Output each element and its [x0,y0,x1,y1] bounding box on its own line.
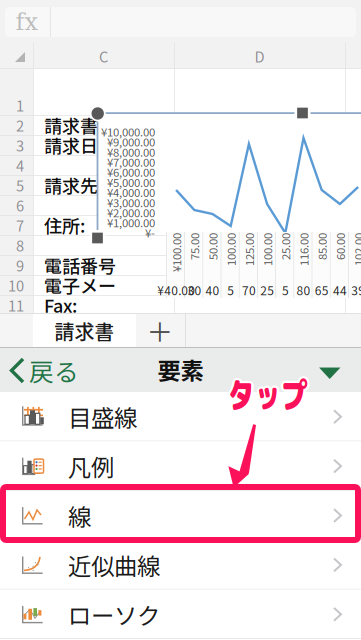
staticText: ¥40.00 [157,281,195,299]
staticText: C [99,45,108,67]
staticText: 8 [16,234,24,256]
button[interactable]: 近似曲線 [0,540,361,590]
staticText: 80 [297,281,311,299]
staticText: 85.00 [324,254,351,270]
staticText: 要素 [157,353,203,386]
staticText: 30 [187,281,201,299]
staticText: ¥7,000.00 [107,154,155,170]
staticText: 5 [16,174,24,196]
staticText: 40 [206,281,220,299]
staticText: 11 [8,294,24,316]
button[interactable]: 戻る [0,348,80,392]
staticText: ¥6,000.00 [107,164,155,180]
button[interactable]: 請求書 [33,314,136,347]
staticText: 凡例 [68,449,114,483]
staticText: タップ [228,373,333,422]
staticText: ¥5,000.00 [107,174,155,190]
staticText: ¥- [145,224,155,241]
staticText: 電子メー [44,272,116,298]
staticText: ¥1,000.00 [107,214,155,231]
staticText: タップ [230,371,335,419]
staticText: 25 [260,281,274,299]
staticText: タップ [228,371,333,419]
staticText: 5 [227,281,234,299]
staticText: 70 [242,281,256,299]
staticText: 65 [315,281,329,299]
staticText: 44 [333,281,347,299]
staticText: ¥100.00 [166,254,205,270]
button[interactable]: New sheet [138,314,182,347]
staticText: 4 [16,154,24,176]
staticText: 7 [16,214,24,236]
staticText: タップ [226,371,331,419]
staticText: 10 [8,274,24,296]
button[interactable]: Collapse [308,348,352,392]
staticText: 102.00 [354,254,361,270]
button[interactable]: 目盛線 [0,392,361,441]
staticText: 100.00 [263,254,296,270]
staticText: タップ [226,372,331,421]
button[interactable]: 凡例 [0,441,361,491]
staticText: 60.00 [342,254,361,270]
staticText: タップ [226,369,331,417]
staticText: 39 [351,281,361,299]
staticText: 75.00 [196,254,223,270]
staticText: 1 [16,94,24,116]
staticText: ローソク [68,597,160,631]
staticText: タップ [230,369,335,417]
staticText: ¥2,000.00 [107,204,155,220]
staticText: Fax: [44,292,77,318]
staticText: 5 [282,281,289,299]
staticText: ¥9,000.00 [107,133,155,150]
staticText: タップ [228,368,333,417]
staticText: 6 [16,194,24,216]
button[interactable]: 線 [0,491,361,540]
staticText: D [254,45,264,67]
staticText: 50.00 [215,254,242,270]
staticText: 電話番号 [44,252,116,278]
staticText: 戻る [29,353,79,388]
staticText: 100.00 [227,254,260,270]
staticText: 近似曲線 [68,548,160,582]
staticText: ¥4,000.00 [107,184,155,200]
staticText: 2 [16,114,24,136]
staticText: ¥8,000.00 [107,143,155,160]
staticText: 線 [68,499,91,532]
staticText: 125.00 [245,254,278,270]
staticText: 請求先: [44,172,103,198]
staticText: 目盛線 [68,400,137,434]
staticText: 3 [16,134,24,156]
staticText: 請求書 [54,316,114,345]
button[interactable]: ローソク [0,590,361,639]
staticText: タップ [230,372,335,421]
staticText: 住所: [44,212,85,238]
staticText: ¥3,000.00 [107,194,155,210]
staticText: 25.00 [287,254,314,270]
staticText: 9 [16,254,24,276]
staticText: 請求日: [44,132,103,158]
staticText: 116.00 [300,254,333,270]
staticText: ¥10,000.00 [101,123,155,140]
staticText: fx [15,8,38,36]
staticText: ＋ [146,311,173,350]
staticText: 請求書番 [44,112,116,138]
